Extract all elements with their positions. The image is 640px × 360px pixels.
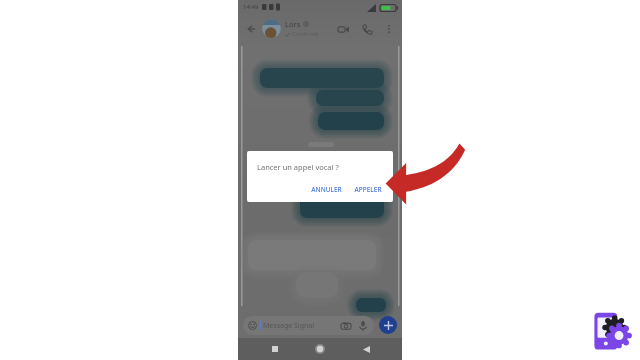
- button[interactable]: [262, 19, 281, 38]
- button[interactable]: App logo: [590, 310, 634, 354]
- staticText: Lors: [285, 19, 301, 29]
- staticText: 14:49: [243, 3, 259, 11]
- button[interactable]: Camera: [339, 319, 352, 332]
- staticText: Confirmé: [292, 30, 319, 38]
- button[interactable]: Voice call: [358, 20, 376, 38]
- button[interactable]: Back: [357, 340, 375, 358]
- staticText: Lancer un appel vocal ?: [257, 162, 339, 172]
- button[interactable]: More options: [380, 20, 398, 38]
- button[interactable]: Message Signal: [243, 316, 374, 335]
- button[interactable]: Video call: [334, 20, 352, 38]
- staticText: ANNULER: [311, 185, 342, 194]
- button[interactable]: Voice message: [356, 319, 369, 332]
- button[interactable]: Back: [243, 21, 259, 37]
- button[interactable]: Home: [311, 340, 329, 358]
- button[interactable]: ANNULER: [308, 183, 345, 196]
- staticText: APPELER: [354, 185, 382, 194]
- button[interactable]: APPELER: [351, 183, 385, 196]
- button[interactable]: Recents: [266, 340, 284, 358]
- button[interactable]: Attach: [379, 316, 397, 334]
- staticText: Message Signal: [263, 321, 315, 331]
